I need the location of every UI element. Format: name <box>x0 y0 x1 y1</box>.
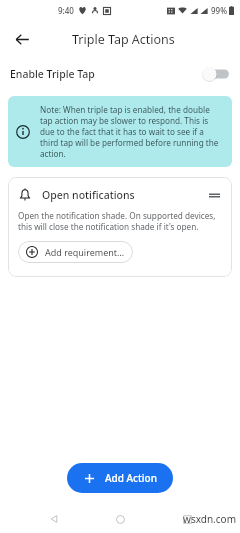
staticText: Note: When triple tap is enabled, the do… <box>40 104 224 159</box>
button[interactable]: Add requirement… <box>18 241 133 263</box>
button[interactable]: Add Action <box>67 463 173 493</box>
staticText: wsxdn.com <box>183 512 236 526</box>
button[interactable]: Enable Triple Tap <box>0 58 240 90</box>
button[interactable]: Home <box>107 506 133 532</box>
button[interactable]: Reorder <box>206 187 222 203</box>
staticText: Triple Tap Actions <box>72 31 175 48</box>
staticText: Add Action <box>105 471 157 485</box>
button[interactable]: Back <box>8 25 36 53</box>
button[interactable]: Back <box>41 506 67 532</box>
button[interactable]: Recent apps <box>174 506 200 532</box>
button[interactable]: Open notifications <box>8 177 232 277</box>
staticText: Enable Triple Tap <box>10 67 95 81</box>
staticText: Add requirement… <box>45 246 125 258</box>
staticText: 9:40 <box>58 5 74 16</box>
button[interactable]: Note: When triple tap is enabled, the do… <box>8 96 232 167</box>
staticText: Open notifications <box>42 188 135 202</box>
button[interactable]: Enable Triple Tap toggle <box>202 66 230 82</box>
staticText: 99% <box>211 5 227 16</box>
staticText: Open the notification shade. On supporte… <box>18 210 222 232</box>
